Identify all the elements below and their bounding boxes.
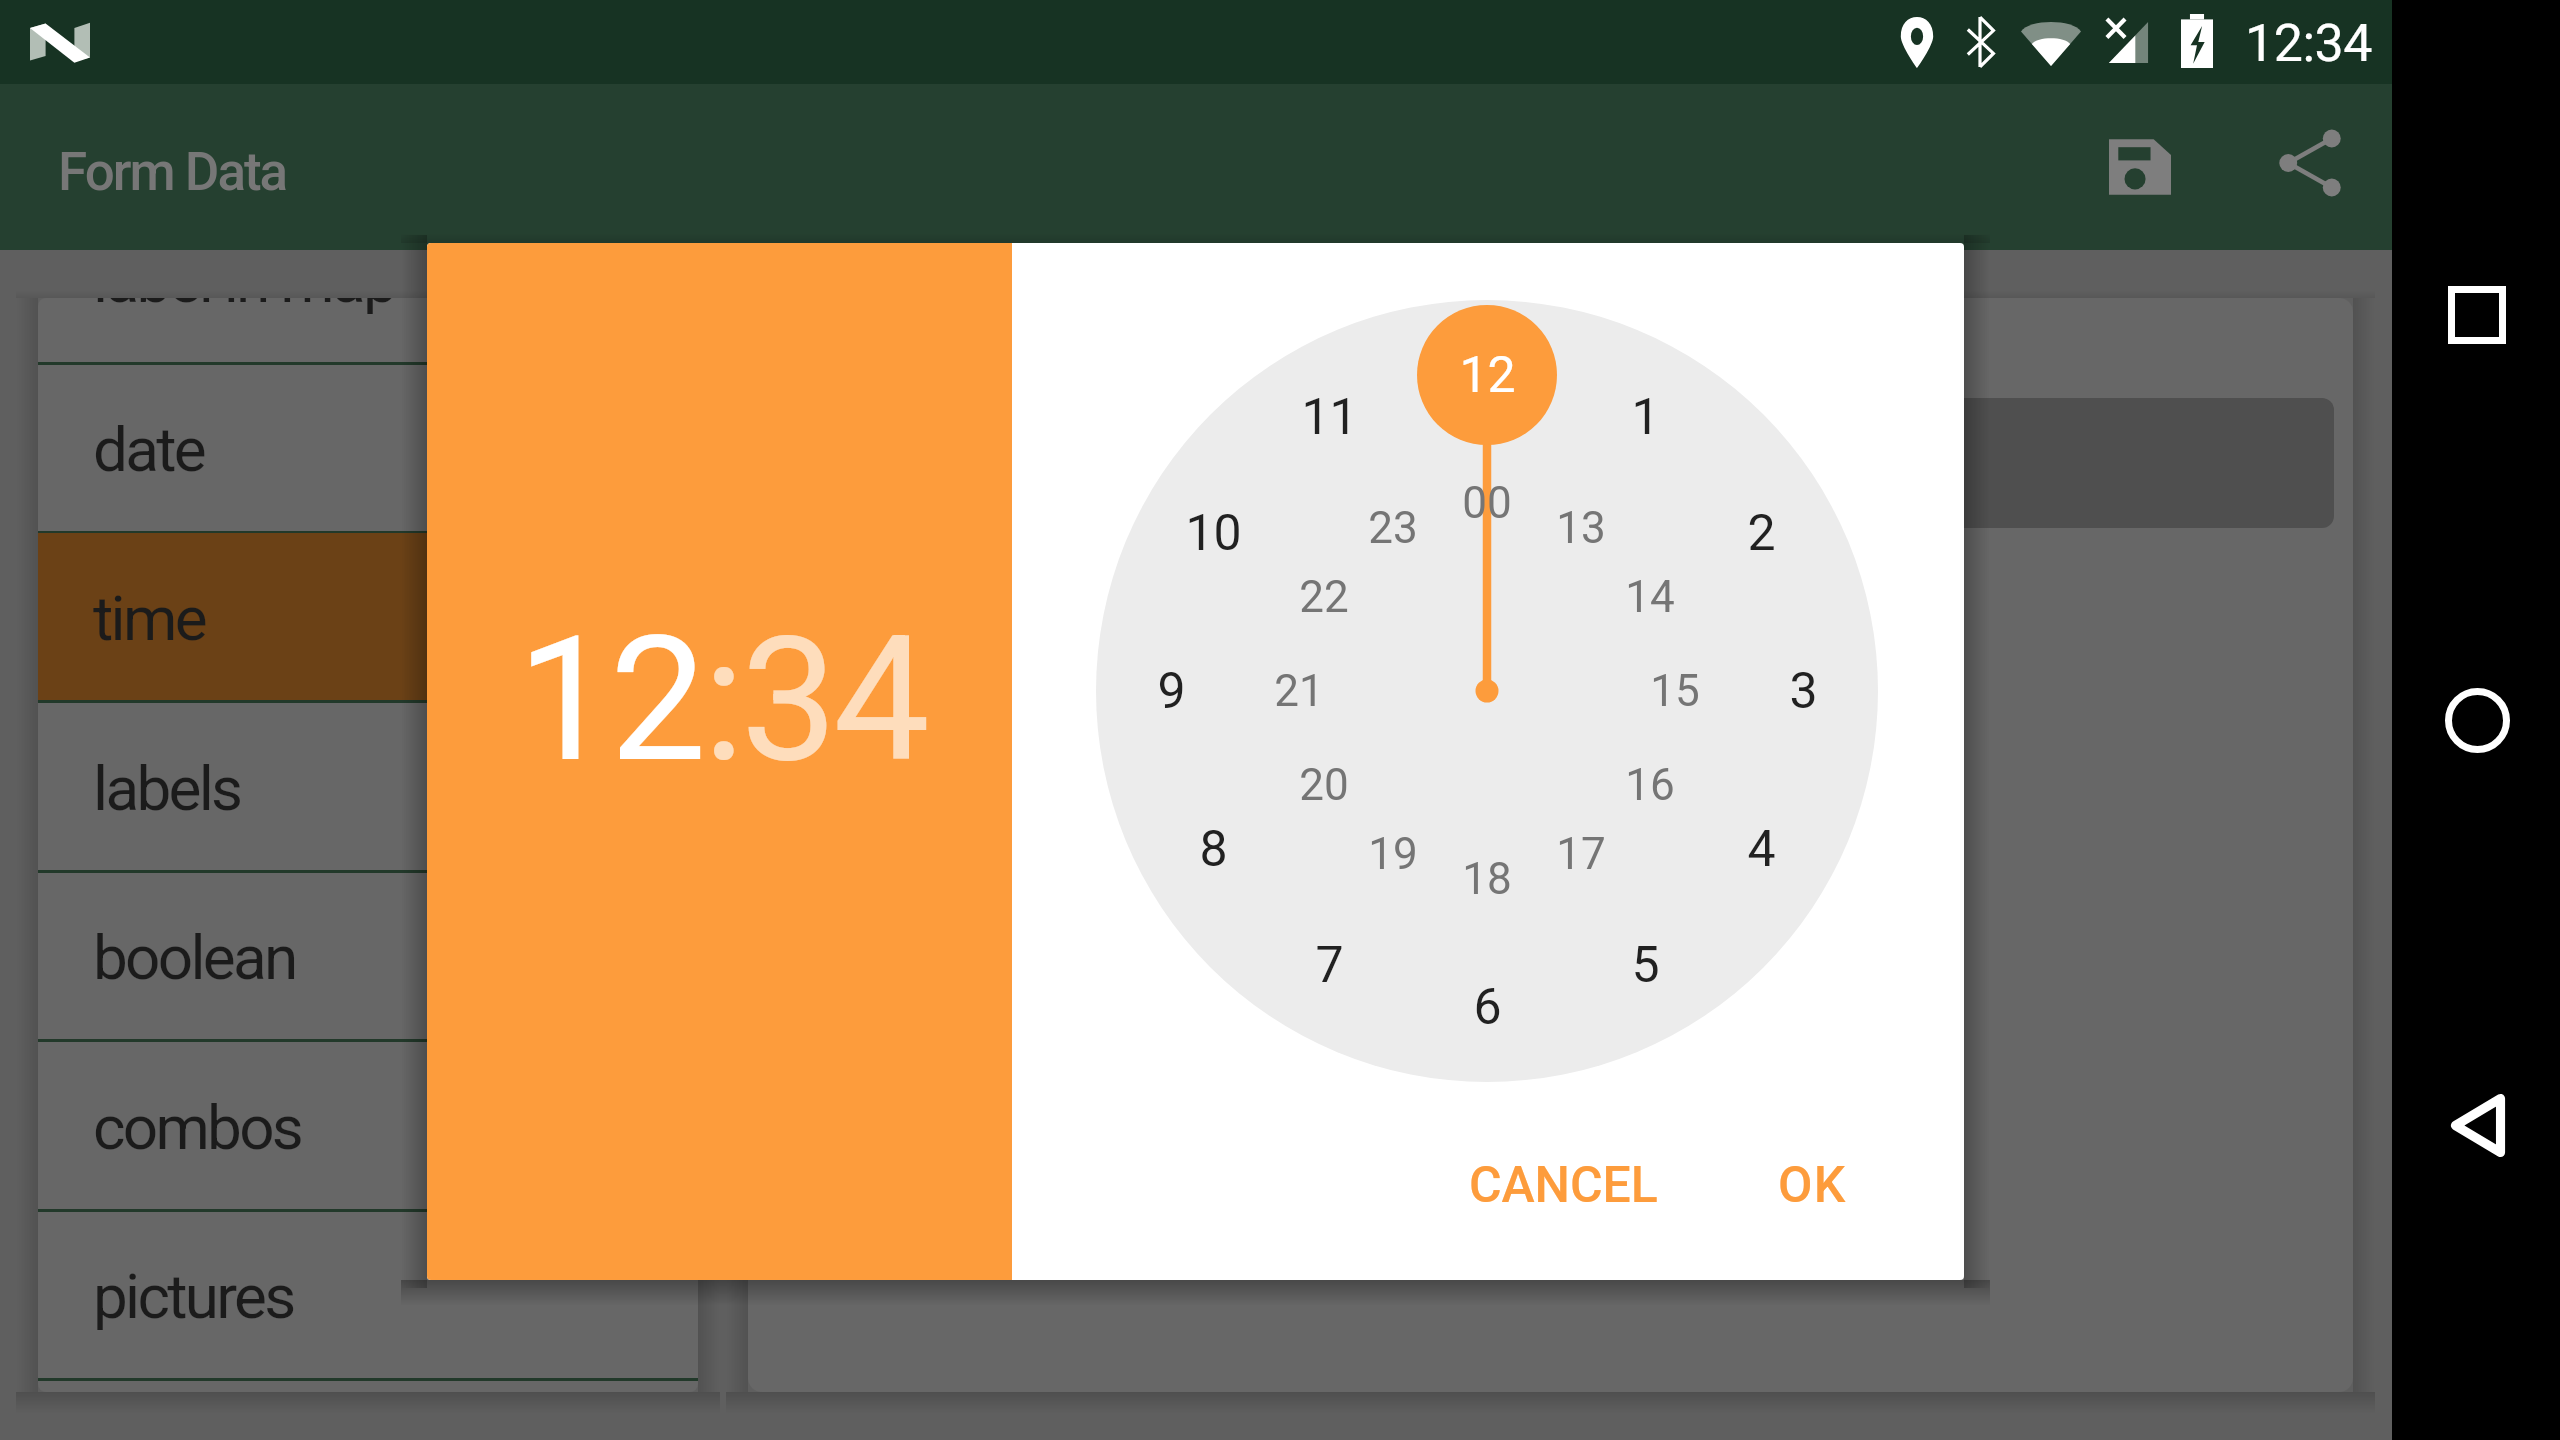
staticText: 1 — [1631, 388, 1660, 447]
button[interactable]: 00 — [1435, 451, 1539, 555]
staticText: 6 — [1473, 978, 1502, 1037]
button[interactable]: 18 — [1435, 827, 1539, 931]
staticText: 11 — [1301, 388, 1358, 447]
button[interactable]: Home — [2417, 660, 2537, 780]
button[interactable]: date — [38, 364, 698, 534]
staticText: 17 — [1556, 828, 1606, 880]
button[interactable]: 23 — [1341, 476, 1445, 580]
button[interactable]: 4 — [1709, 797, 1813, 901]
staticText: 21 — [1274, 665, 1324, 717]
button[interactable]: 3 — [1751, 639, 1855, 743]
button[interactable]: 1 — [1593, 365, 1697, 469]
staticText: time — [93, 582, 205, 655]
staticText: 13 — [1556, 502, 1606, 554]
staticText: boolean — [93, 921, 296, 994]
staticText: 4 — [1747, 820, 1776, 879]
staticText: label in map — [93, 298, 396, 317]
staticText: 12 — [517, 599, 703, 801]
staticText: 7 — [1315, 936, 1344, 995]
staticText: :34 — [703, 599, 926, 801]
button[interactable]: 8 — [1161, 797, 1265, 901]
staticText: 10 — [1185, 504, 1242, 563]
button[interactable]: OK — [1746, 1130, 1879, 1241]
button[interactable]: 9 — [1119, 639, 1223, 743]
staticText: 14 — [1625, 571, 1675, 623]
button[interactable]: 6 — [1435, 955, 1539, 1059]
button[interactable]: boolean — [38, 872, 698, 1042]
button[interactable]: 11 — [1277, 365, 1381, 469]
button[interactable]: 7 — [1277, 913, 1381, 1017]
staticText: OK — [1778, 1156, 1847, 1215]
button[interactable]: Select hour — [517, 599, 703, 801]
button[interactable]: 15 — [1623, 639, 1727, 743]
button[interactable]: pictures — [38, 1211, 698, 1381]
button[interactable]: Form Data — [58, 141, 287, 203]
button[interactable]: 5 — [1593, 913, 1697, 1017]
button[interactable]: 2 — [1709, 481, 1813, 585]
button[interactable]: Save — [2085, 112, 2195, 222]
button[interactable]: 22 — [1272, 545, 1376, 649]
staticText: CANCEL — [1469, 1156, 1658, 1215]
button[interactable]: CANCEL — [1437, 1130, 1690, 1241]
staticText: 16 — [1625, 759, 1675, 811]
staticText: 22 — [1299, 571, 1349, 623]
staticText: 23 — [1368, 502, 1418, 554]
staticText: combos — [93, 1091, 302, 1164]
staticText: 15 — [1650, 665, 1700, 717]
staticText: Form Data — [58, 141, 287, 203]
button[interactable]: 14 — [1598, 545, 1702, 649]
button[interactable]: 17 — [1529, 802, 1633, 906]
staticText: 5 — [1631, 936, 1660, 995]
button[interactable]: time — [38, 533, 698, 703]
button[interactable]: Select minute — [703, 599, 926, 801]
staticText: 18 — [1462, 853, 1512, 905]
button[interactable]: 10 — [1161, 481, 1265, 585]
button[interactable]: 16 — [1598, 733, 1702, 837]
staticText: 12:34 — [2245, 13, 2372, 74]
staticText: 12 — [1459, 346, 1516, 405]
staticText: 20 — [1299, 759, 1349, 811]
button[interactable]: Back — [2417, 1065, 2537, 1185]
button[interactable]: 21 — [1247, 639, 1351, 743]
button[interactable]: 20 — [1272, 733, 1376, 837]
button[interactable]: Share — [2255, 108, 2365, 218]
staticText: 00 — [1462, 477, 1512, 529]
staticText: 8 — [1199, 820, 1228, 879]
button[interactable]: 19 — [1341, 802, 1445, 906]
staticText: 3 — [1789, 662, 1818, 721]
staticText: 19 — [1368, 828, 1418, 880]
staticText: labels — [93, 752, 241, 825]
staticText: 2 — [1747, 504, 1776, 563]
staticText: pictures — [93, 1260, 294, 1333]
staticText: 9 — [1157, 662, 1186, 721]
button[interactable]: 12 — [1435, 323, 1539, 427]
button[interactable]: labels — [38, 703, 698, 873]
button[interactable]: 13 — [1529, 476, 1633, 580]
button[interactable]: Recents — [2417, 255, 2537, 375]
button[interactable]: label in map — [38, 298, 698, 365]
button[interactable]: combos — [38, 1042, 698, 1212]
staticText: date — [93, 413, 205, 486]
